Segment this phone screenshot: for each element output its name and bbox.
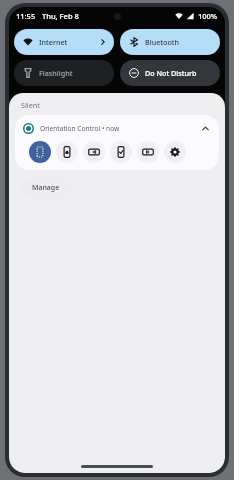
staticText: Do Not Disturb: [145, 68, 213, 78]
staticText: Bluetooth: [145, 37, 213, 47]
button[interactable]: Do Not Disturb: [120, 60, 220, 86]
button[interactable]: Orientation Control • now: [15, 115, 219, 170]
staticText: Thu, Feb 8: [42, 11, 79, 21]
button[interactable]: Auto rotate: [29, 141, 51, 163]
staticText: Manage: [32, 183, 60, 193]
button[interactable]: Landscape left: [83, 141, 105, 163]
button[interactable]: Portrait lock: [56, 141, 78, 163]
staticText: Silent: [21, 100, 40, 110]
staticText: 11:55: [16, 11, 36, 21]
button[interactable]: Settings: [164, 141, 186, 163]
button[interactable]: Internet: [14, 29, 114, 55]
staticText: 100%: [198, 11, 218, 21]
staticText: Flashlight: [39, 68, 107, 78]
button[interactable]: Flashlight: [14, 60, 114, 86]
button[interactable]: Collapse: [199, 122, 211, 134]
button[interactable]: Portrait auto: [110, 141, 132, 163]
button[interactable]: Manage: [21, 178, 71, 198]
button[interactable]: Bluetooth: [120, 29, 220, 55]
button[interactable]: Landscape right: [137, 141, 159, 163]
staticText: Orientation Control • now: [40, 124, 199, 133]
staticText: Internet: [39, 37, 99, 47]
